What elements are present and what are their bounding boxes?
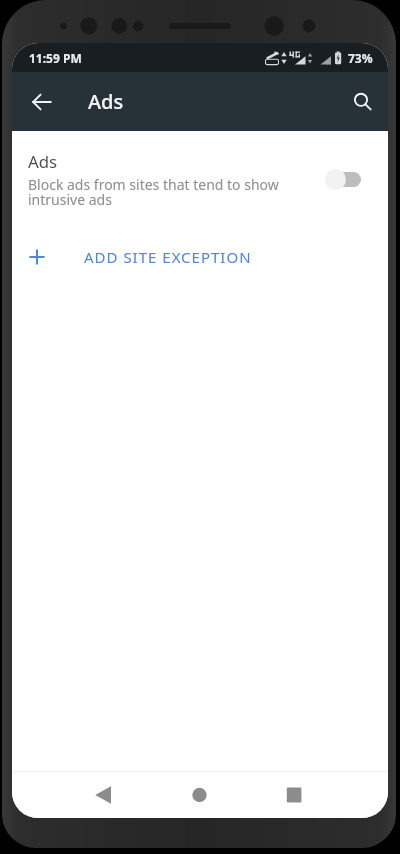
button[interactable]: Search: [341, 80, 385, 124]
staticText: ADD SITE EXCEPTION: [84, 247, 252, 267]
button[interactable]: Recent apps: [272, 773, 316, 817]
staticText: Block ads from sites that tend to show i…: [28, 175, 296, 209]
button[interactable]: Navigate up: [20, 80, 64, 124]
button[interactable]: ADD SITE EXCEPTION: [12, 235, 388, 279]
button[interactable]: Ads: [12, 137, 388, 221]
button[interactable]: Home: [177, 773, 221, 817]
staticText: Ads: [28, 150, 58, 173]
staticText: 11:59 PM: [29, 50, 82, 66]
button[interactable]: Back: [82, 773, 126, 817]
button[interactable]: Toggle ads blocking: [325, 168, 361, 190]
staticText: Ads: [88, 88, 124, 115]
staticText: 73%: [348, 50, 373, 66]
